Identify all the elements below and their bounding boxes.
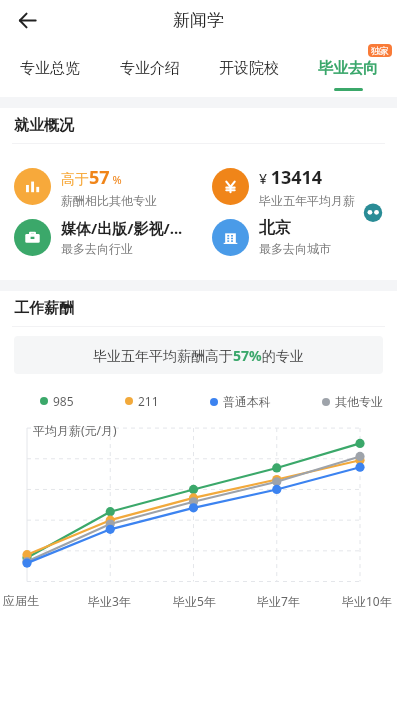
staticText: 其他专业 [335,394,383,409]
staticText: 毕业五年平均月薪 [259,193,355,208]
staticText: 媒体/出版/影视/... [61,218,183,238]
button[interactable]: 专业总览 [0,40,100,97]
button[interactable]: 北京 [212,218,397,256]
staticText: 应届生 [3,593,39,608]
staticText: 毕业7年 [257,593,300,609]
staticText: 毕业五年平均薪酬高于57%的专业 [93,346,304,365]
staticText: 开设院校 [219,59,279,78]
staticText: 平均月薪(元/月) [33,422,117,438]
staticText: 毕业10年 [342,593,392,609]
button[interactable]: ¥ 13414 [212,165,397,208]
button[interactable]: 高于57 % [14,165,198,208]
button[interactable]: Back [11,4,44,37]
staticText: 高于57 % [61,165,122,190]
staticText: 北京 [259,218,291,238]
staticText: 普通本科 [223,394,271,409]
staticText: 新闻学 [173,10,224,31]
staticText: 薪酬相比其他专业 [61,193,157,208]
button[interactable]: 专业介绍 [100,40,199,97]
staticText: 985 [53,393,74,409]
button[interactable]: Chat assistant [351,193,395,237]
staticText: 工作薪酬 [14,299,74,318]
staticText: 毕业3年 [88,593,131,609]
staticText: 最多去向城市 [259,241,331,256]
staticText: ¥ 13414 [259,165,323,190]
staticText: 就业概况 [14,116,74,135]
staticText: 211 [138,393,159,409]
button[interactable]: 媒体/出版/影视/... [14,218,198,256]
staticText: 专业总览 [20,59,80,78]
staticText: 专业介绍 [120,59,180,78]
staticText: 独家 [371,45,389,56]
staticText: 最多去向行业 [61,241,133,256]
button[interactable]: 开设院校 [199,40,298,97]
staticText: 毕业5年 [173,593,216,609]
button[interactable]: 毕业去向 [298,40,397,97]
staticText: 毕业去向 [318,59,378,78]
